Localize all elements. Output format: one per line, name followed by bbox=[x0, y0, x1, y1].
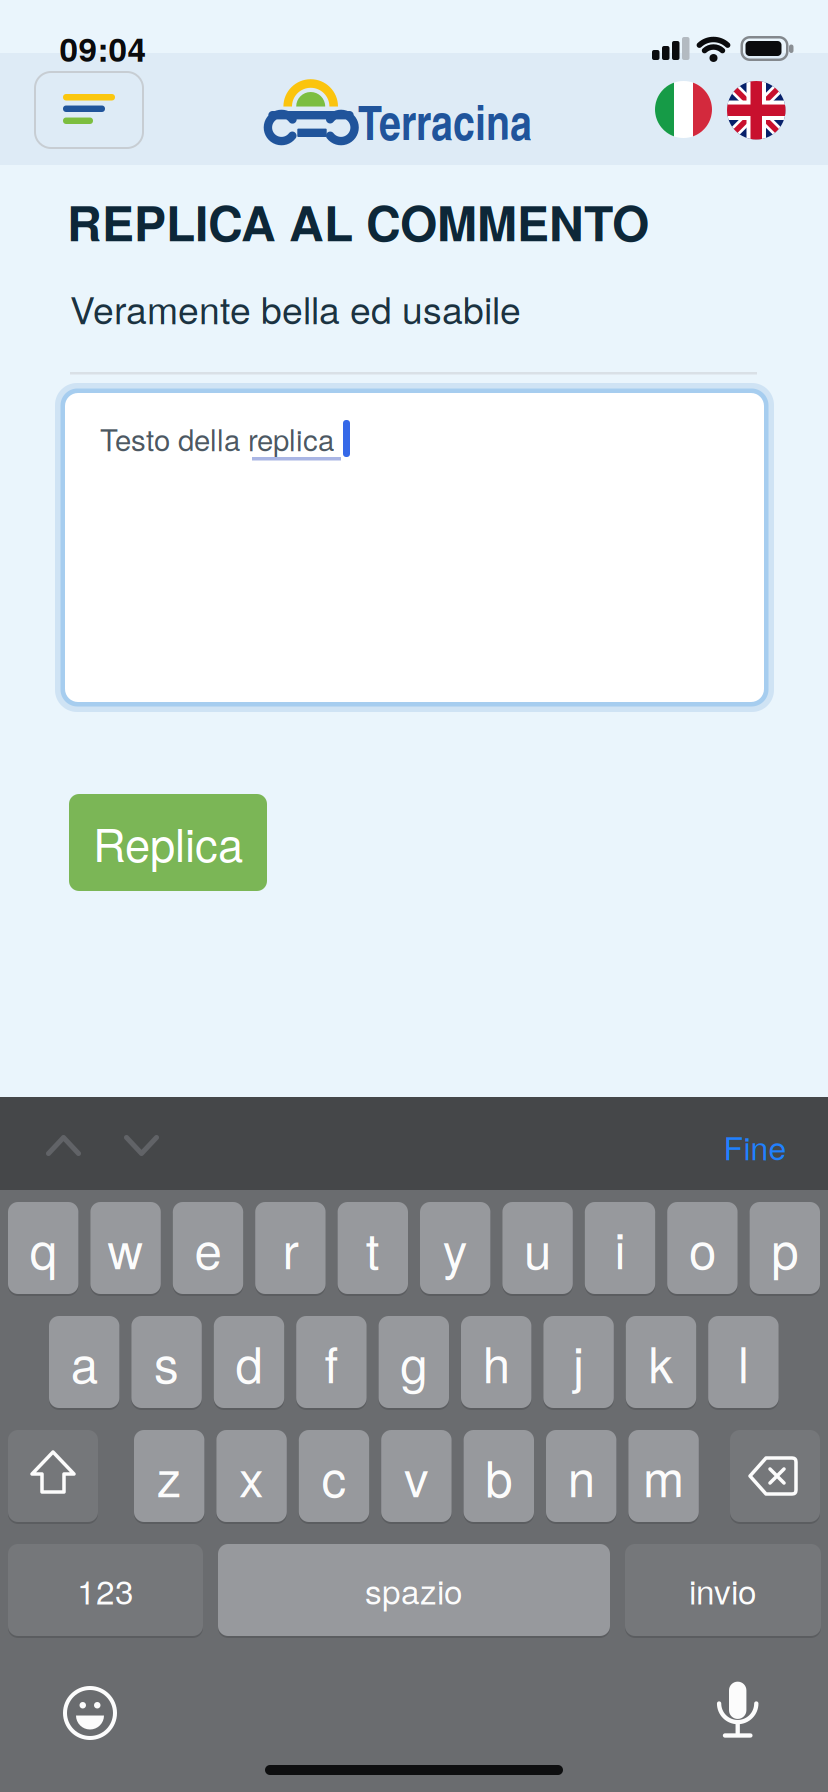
button[interactable]: c bbox=[299, 1430, 369, 1522]
staticText: f bbox=[324, 1328, 338, 1396]
button[interactable]: Replica bbox=[69, 794, 267, 891]
staticText: y bbox=[443, 1214, 468, 1282]
button[interactable]: x bbox=[216, 1430, 287, 1522]
staticText: q bbox=[30, 1214, 57, 1282]
button[interactable]: g bbox=[379, 1316, 449, 1408]
button[interactable]: q bbox=[8, 1202, 78, 1294]
button[interactable]: b bbox=[464, 1430, 534, 1522]
button[interactable]: o bbox=[667, 1202, 738, 1294]
button[interactable]: w bbox=[90, 1202, 161, 1294]
button[interactable]: j bbox=[543, 1316, 614, 1408]
button[interactable]: Fine bbox=[723, 1124, 786, 1169]
staticText: l bbox=[738, 1328, 749, 1396]
button[interactable] bbox=[655, 81, 712, 138]
button[interactable]: p bbox=[750, 1202, 820, 1294]
button[interactable]: Testo della replica bbox=[55, 383, 774, 712]
staticText: spazio bbox=[365, 1567, 463, 1613]
button[interactable] bbox=[727, 81, 785, 139]
staticText: Replica bbox=[93, 811, 243, 874]
button[interactable]: l bbox=[708, 1316, 779, 1408]
button[interactable]: f bbox=[296, 1316, 367, 1408]
staticText: n bbox=[568, 1442, 595, 1510]
staticText: b bbox=[485, 1442, 512, 1510]
button[interactable]: a bbox=[49, 1316, 119, 1408]
button[interactable]: z bbox=[134, 1430, 204, 1522]
button[interactable] bbox=[8, 1430, 98, 1522]
staticText: o bbox=[689, 1214, 716, 1282]
staticText: g bbox=[400, 1328, 427, 1396]
staticText: j bbox=[573, 1328, 584, 1396]
staticText: 09:04 bbox=[59, 25, 146, 71]
button[interactable] bbox=[730, 1430, 820, 1522]
button[interactable]: v bbox=[381, 1430, 452, 1522]
staticText: h bbox=[483, 1328, 510, 1396]
button[interactable]: h bbox=[461, 1316, 531, 1408]
button[interactable] bbox=[45, 1134, 81, 1156]
staticText: v bbox=[404, 1442, 429, 1510]
staticText: i bbox=[614, 1214, 625, 1282]
staticText: REPLICA AL COMMENTO bbox=[67, 188, 649, 255]
staticText: x bbox=[239, 1442, 264, 1510]
button[interactable]: s bbox=[131, 1316, 202, 1408]
button[interactable]: 123 bbox=[8, 1544, 203, 1636]
button[interactable] bbox=[34, 71, 144, 149]
button[interactable]: d bbox=[214, 1316, 284, 1408]
staticText: z bbox=[157, 1442, 182, 1510]
staticText: r bbox=[282, 1214, 298, 1282]
staticText: Terracina bbox=[358, 87, 532, 155]
staticText: k bbox=[648, 1328, 673, 1396]
button[interactable]: n bbox=[546, 1430, 616, 1522]
staticText: Testo della replica bbox=[100, 418, 334, 459]
staticText: d bbox=[235, 1328, 262, 1396]
staticText: p bbox=[771, 1214, 798, 1282]
staticText: w bbox=[108, 1214, 144, 1282]
staticText: t bbox=[366, 1214, 380, 1282]
button[interactable]: k bbox=[626, 1316, 696, 1408]
staticText: m bbox=[643, 1442, 684, 1510]
button[interactable]: spazio bbox=[218, 1544, 610, 1636]
button[interactable]: m bbox=[628, 1430, 699, 1522]
staticText: invio bbox=[689, 1567, 757, 1613]
staticText: 123 bbox=[77, 1567, 134, 1613]
staticText: e bbox=[194, 1214, 221, 1282]
staticText: Fine bbox=[723, 1124, 786, 1169]
button[interactable] bbox=[123, 1134, 159, 1156]
button[interactable]: r bbox=[255, 1202, 326, 1294]
staticText: s bbox=[154, 1328, 179, 1396]
button[interactable] bbox=[63, 1686, 117, 1740]
button[interactable]: y bbox=[420, 1202, 490, 1294]
button[interactable]: e bbox=[173, 1202, 243, 1294]
button[interactable]: u bbox=[502, 1202, 573, 1294]
staticText: c bbox=[321, 1442, 346, 1510]
staticText: u bbox=[524, 1214, 551, 1282]
button[interactable]: invio bbox=[625, 1544, 821, 1636]
staticText: Veramente bella ed usabile bbox=[70, 282, 521, 334]
staticText: a bbox=[71, 1328, 98, 1396]
button[interactable]: t bbox=[338, 1202, 408, 1294]
button[interactable] bbox=[715, 1676, 759, 1742]
button[interactable]: i bbox=[585, 1202, 655, 1294]
